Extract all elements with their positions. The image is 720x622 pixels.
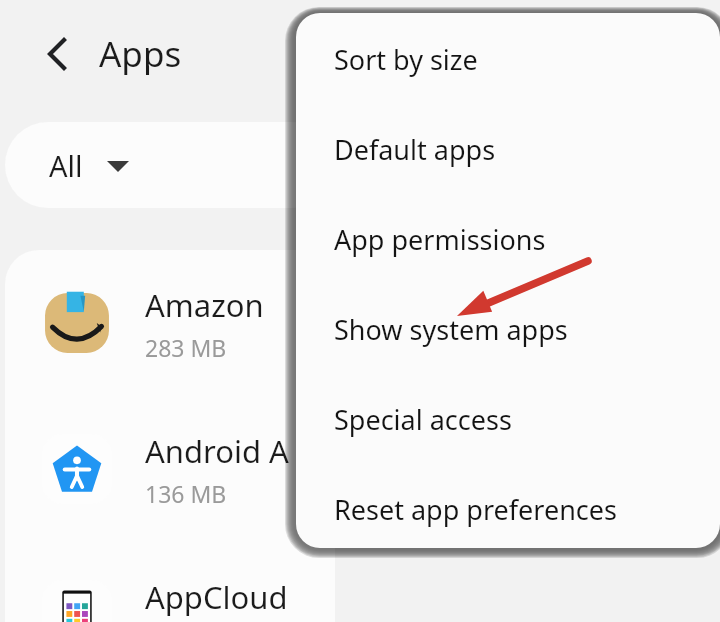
button[interactable]: Special access — [296, 383, 720, 455]
button[interactable]: Default apps — [296, 113, 720, 185]
staticText: Show system apps — [334, 311, 568, 348]
staticText: AppCloud — [145, 576, 288, 618]
staticText: App permissions — [334, 221, 546, 258]
staticText: 136 MB — [145, 478, 227, 509]
button[interactable]: Sort by size — [296, 23, 720, 95]
button[interactable]: App permissions — [296, 203, 720, 275]
staticText: Special access — [334, 401, 512, 438]
button[interactable]: Back — [28, 26, 86, 82]
staticText: Amazon — [145, 284, 264, 326]
staticText: All — [49, 146, 83, 185]
staticText: Sort by size — [334, 41, 478, 78]
button[interactable]: Amazon — [5, 250, 335, 396]
staticText: Default apps — [334, 131, 496, 168]
button[interactable]: All — [5, 122, 335, 208]
button[interactable]: Reset app preferences — [296, 473, 720, 545]
staticText: Android A — [145, 430, 289, 472]
button[interactable]: Show system apps — [296, 293, 720, 365]
staticText: Apps — [99, 30, 182, 78]
button[interactable]: Android A — [5, 396, 335, 542]
button[interactable]: AppCloud — [5, 542, 335, 622]
staticText: 283 MB — [145, 332, 227, 363]
staticText: Reset app preferences — [334, 491, 617, 528]
